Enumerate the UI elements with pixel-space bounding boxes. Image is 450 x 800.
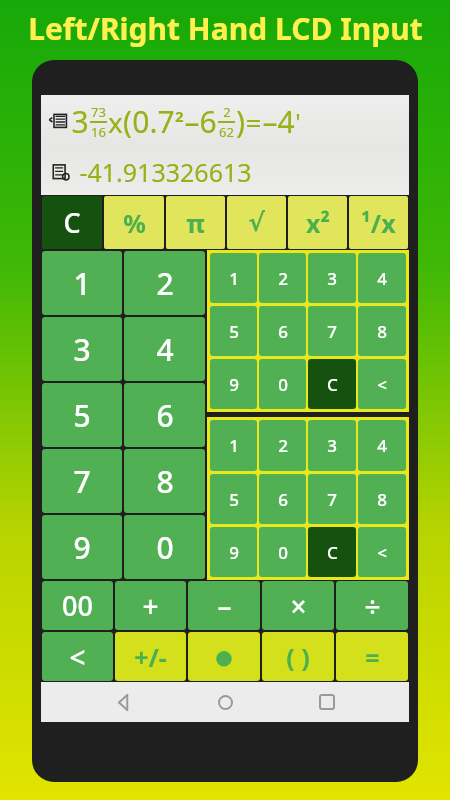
button[interactable]: 4: [358, 420, 406, 471]
button[interactable]: ×: [262, 581, 334, 630]
staticText: ': [295, 105, 301, 138]
staticText: 5: [229, 488, 239, 511]
button[interactable]: 3: [308, 253, 356, 303]
button[interactable]: 3: [42, 317, 122, 381]
button[interactable]: 6: [124, 383, 205, 447]
button[interactable]: 1: [210, 253, 257, 303]
button[interactable]: <: [358, 359, 406, 409]
staticText: 2: [278, 434, 288, 457]
staticText: 1: [73, 263, 91, 304]
button[interactable]: 8: [358, 474, 406, 524]
button[interactable]: ( ): [262, 632, 334, 681]
staticText: %: [123, 206, 146, 240]
button[interactable]: 0: [259, 359, 306, 409]
button[interactable]: 5: [210, 306, 257, 356]
staticText: <: [377, 541, 387, 564]
button[interactable]: C: [308, 359, 356, 409]
button[interactable]: ¹/x: [349, 196, 408, 249]
button[interactable]: Recents: [307, 682, 347, 722]
button[interactable]: 9: [42, 515, 122, 579]
button[interactable]: 2: [259, 420, 306, 471]
button[interactable]: ●: [188, 632, 260, 681]
staticText: –4: [262, 101, 295, 142]
button[interactable]: C: [308, 527, 356, 577]
button[interactable]: <: [42, 632, 113, 681]
button[interactable]: <: [358, 527, 406, 577]
staticText: x: [108, 103, 123, 141]
button[interactable]: 9: [210, 527, 257, 577]
button[interactable]: 6: [259, 306, 306, 356]
staticText: –6: [184, 101, 217, 142]
staticText: 3: [327, 267, 337, 290]
staticText: 5: [73, 395, 91, 436]
staticText: ●: [215, 645, 233, 668]
button[interactable]: C: [42, 196, 102, 249]
staticText: 0.7: [132, 101, 175, 142]
button[interactable]: –: [188, 581, 260, 630]
button[interactable]: %: [104, 196, 164, 249]
staticText: 8: [156, 461, 174, 502]
staticText: 2: [175, 106, 184, 126]
staticText: 9: [229, 541, 239, 564]
staticText: (: [123, 101, 132, 142]
button[interactable]: ÷: [336, 581, 408, 630]
staticText: ): [236, 101, 245, 142]
button[interactable]: 5: [210, 474, 257, 524]
button[interactable]: 7: [308, 306, 356, 356]
button[interactable]: 2: [124, 251, 205, 315]
staticText: 9: [73, 527, 91, 568]
button[interactable]: 0: [124, 515, 205, 579]
button[interactable]: 3: [308, 420, 356, 471]
button[interactable]: 6: [259, 474, 306, 524]
staticText: C: [327, 541, 338, 564]
staticText: 0: [278, 373, 288, 396]
staticText: 1: [229, 267, 239, 290]
button[interactable]: x²: [288, 196, 347, 249]
staticText: ( ): [286, 640, 310, 674]
button[interactable]: 9: [210, 359, 257, 409]
staticText: 2: [278, 267, 288, 290]
staticText: 7: [327, 320, 337, 343]
staticText: 73: [91, 103, 106, 121]
staticText: 8: [377, 488, 387, 511]
staticText: =: [245, 103, 262, 141]
staticText: 1: [229, 434, 239, 457]
button[interactable]: 1: [42, 251, 122, 315]
staticText: 00: [62, 587, 93, 624]
staticText: ×: [290, 587, 307, 625]
button[interactable]: =: [336, 632, 408, 681]
button[interactable]: 1: [210, 420, 257, 471]
staticText: C: [63, 204, 81, 241]
staticText: 7: [327, 488, 337, 511]
button[interactable]: +: [115, 581, 186, 630]
button[interactable]: 8: [358, 306, 406, 356]
staticText: 4: [156, 329, 174, 370]
button[interactable]: 5: [42, 383, 122, 447]
staticText: 8: [377, 320, 387, 343]
button[interactable]: √: [227, 196, 286, 249]
staticText: 3: [73, 329, 91, 370]
staticText: =: [365, 640, 380, 674]
staticText: 0: [278, 541, 288, 564]
button[interactable]: Home: [205, 682, 245, 722]
staticText: <: [69, 638, 86, 676]
button[interactable]: 00: [42, 581, 113, 630]
button[interactable]: 8: [124, 449, 205, 513]
staticText: 7: [73, 461, 91, 502]
button[interactable]: 4: [124, 317, 205, 381]
staticText: 5: [229, 320, 239, 343]
staticText: 62: [219, 123, 234, 141]
button[interactable]: +/-: [115, 632, 186, 681]
button[interactable]: 7: [42, 449, 122, 513]
button[interactable]: 0: [259, 527, 306, 577]
button[interactable]: 4: [358, 253, 406, 303]
button[interactable]: 7: [308, 474, 356, 524]
staticText: √: [248, 208, 265, 237]
button[interactable]: History: [45, 109, 71, 135]
staticText: x²: [306, 206, 330, 240]
button[interactable]: π: [166, 196, 225, 249]
button[interactable]: 2: [259, 253, 306, 303]
staticText: 6: [156, 395, 174, 436]
button[interactable]: Result log: [47, 159, 73, 185]
button[interactable]: Back: [103, 682, 143, 722]
